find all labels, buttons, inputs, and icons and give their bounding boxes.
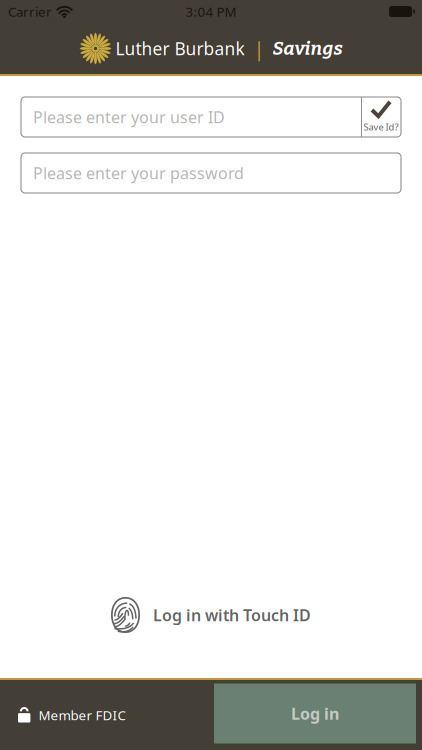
staticText: Luther Burbank xyxy=(115,37,244,60)
staticText: 3:04 PM xyxy=(185,3,236,20)
button[interactable]: Save Id xyxy=(361,97,401,137)
staticText: Carrier xyxy=(8,3,52,20)
button[interactable]: Log in with Touch ID xyxy=(21,593,401,637)
staticText: Savings xyxy=(272,37,342,60)
staticText: Save Id? xyxy=(363,121,398,133)
staticText: Member FDIC xyxy=(38,706,125,724)
staticText: Please enter your password xyxy=(33,162,244,184)
staticText: Please enter your user ID xyxy=(33,106,225,128)
button[interactable]: Log in xyxy=(214,683,416,743)
staticText: Log in with Touch ID xyxy=(153,604,311,626)
staticText: Log in xyxy=(291,703,339,724)
staticText: | xyxy=(253,35,264,62)
